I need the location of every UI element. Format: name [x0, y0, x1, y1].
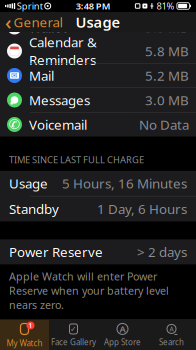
staticText: TIME SINCE LAST FULL CHARGE [9, 153, 144, 166]
staticText: General [13, 13, 62, 31]
staticText: Voicemail [29, 116, 87, 133]
staticText: 1 [28, 321, 32, 330]
staticText: ✓ [70, 324, 77, 333]
staticText: No Data [139, 116, 189, 133]
staticText: Usage [75, 12, 120, 32]
staticText: Apple Watch will enter Power Reserve whe… [9, 269, 169, 312]
staticText: 3.0 MB [145, 91, 189, 109]
staticText: My Watch [6, 338, 42, 348]
staticText: 5.8 MB [145, 42, 189, 60]
button[interactable]: 1 [0, 320, 49, 350]
staticText: Wallet [29, 18, 67, 36]
staticText: > 2 days [137, 243, 187, 261]
staticText: Sprint [17, 0, 43, 12]
button[interactable]: A [98, 320, 147, 350]
staticText: Search [159, 337, 184, 347]
button[interactable]: Messages [0, 88, 196, 112]
staticText: Power Reserve [9, 243, 103, 261]
button[interactable]: ✓ [49, 320, 98, 350]
staticText: 3:48 PM [76, 0, 111, 12]
staticText: 5.2 MB [145, 67, 189, 84]
staticText: A [169, 324, 173, 333]
staticText: App Store [104, 337, 141, 347]
button[interactable]: A [147, 320, 196, 350]
staticText: 1 Day, 6 Hours [97, 200, 187, 218]
staticText: 81% [156, 0, 174, 12]
button[interactable]: Calendar & Reminders [0, 39, 196, 63]
button[interactable]: Wallet [0, 32, 196, 39]
staticText: Calendar & Reminders [29, 33, 97, 69]
button[interactable]: ✆ [0, 112, 196, 136]
staticText: Face Gallery [51, 337, 96, 347]
staticText: ✆ [9, 117, 20, 132]
button[interactable]: ‹ [0, 12, 67, 32]
staticText: Standby [9, 200, 59, 218]
staticText: A [119, 323, 125, 335]
staticText: Usage [9, 174, 48, 192]
staticText: Messages [29, 91, 90, 109]
staticText: ‹ [5, 9, 12, 35]
button[interactable]: ✉ [0, 63, 196, 87]
button[interactable]: Power Reserve [0, 239, 196, 264]
button[interactable]: Standby [0, 196, 196, 221]
staticText: 5 Hours, 16 Minutes [62, 174, 187, 192]
staticText: ✉ [11, 71, 18, 80]
staticText: Mail [29, 67, 54, 84]
button[interactable]: Usage [0, 171, 196, 196]
staticText: 5.5 MB [145, 18, 189, 36]
